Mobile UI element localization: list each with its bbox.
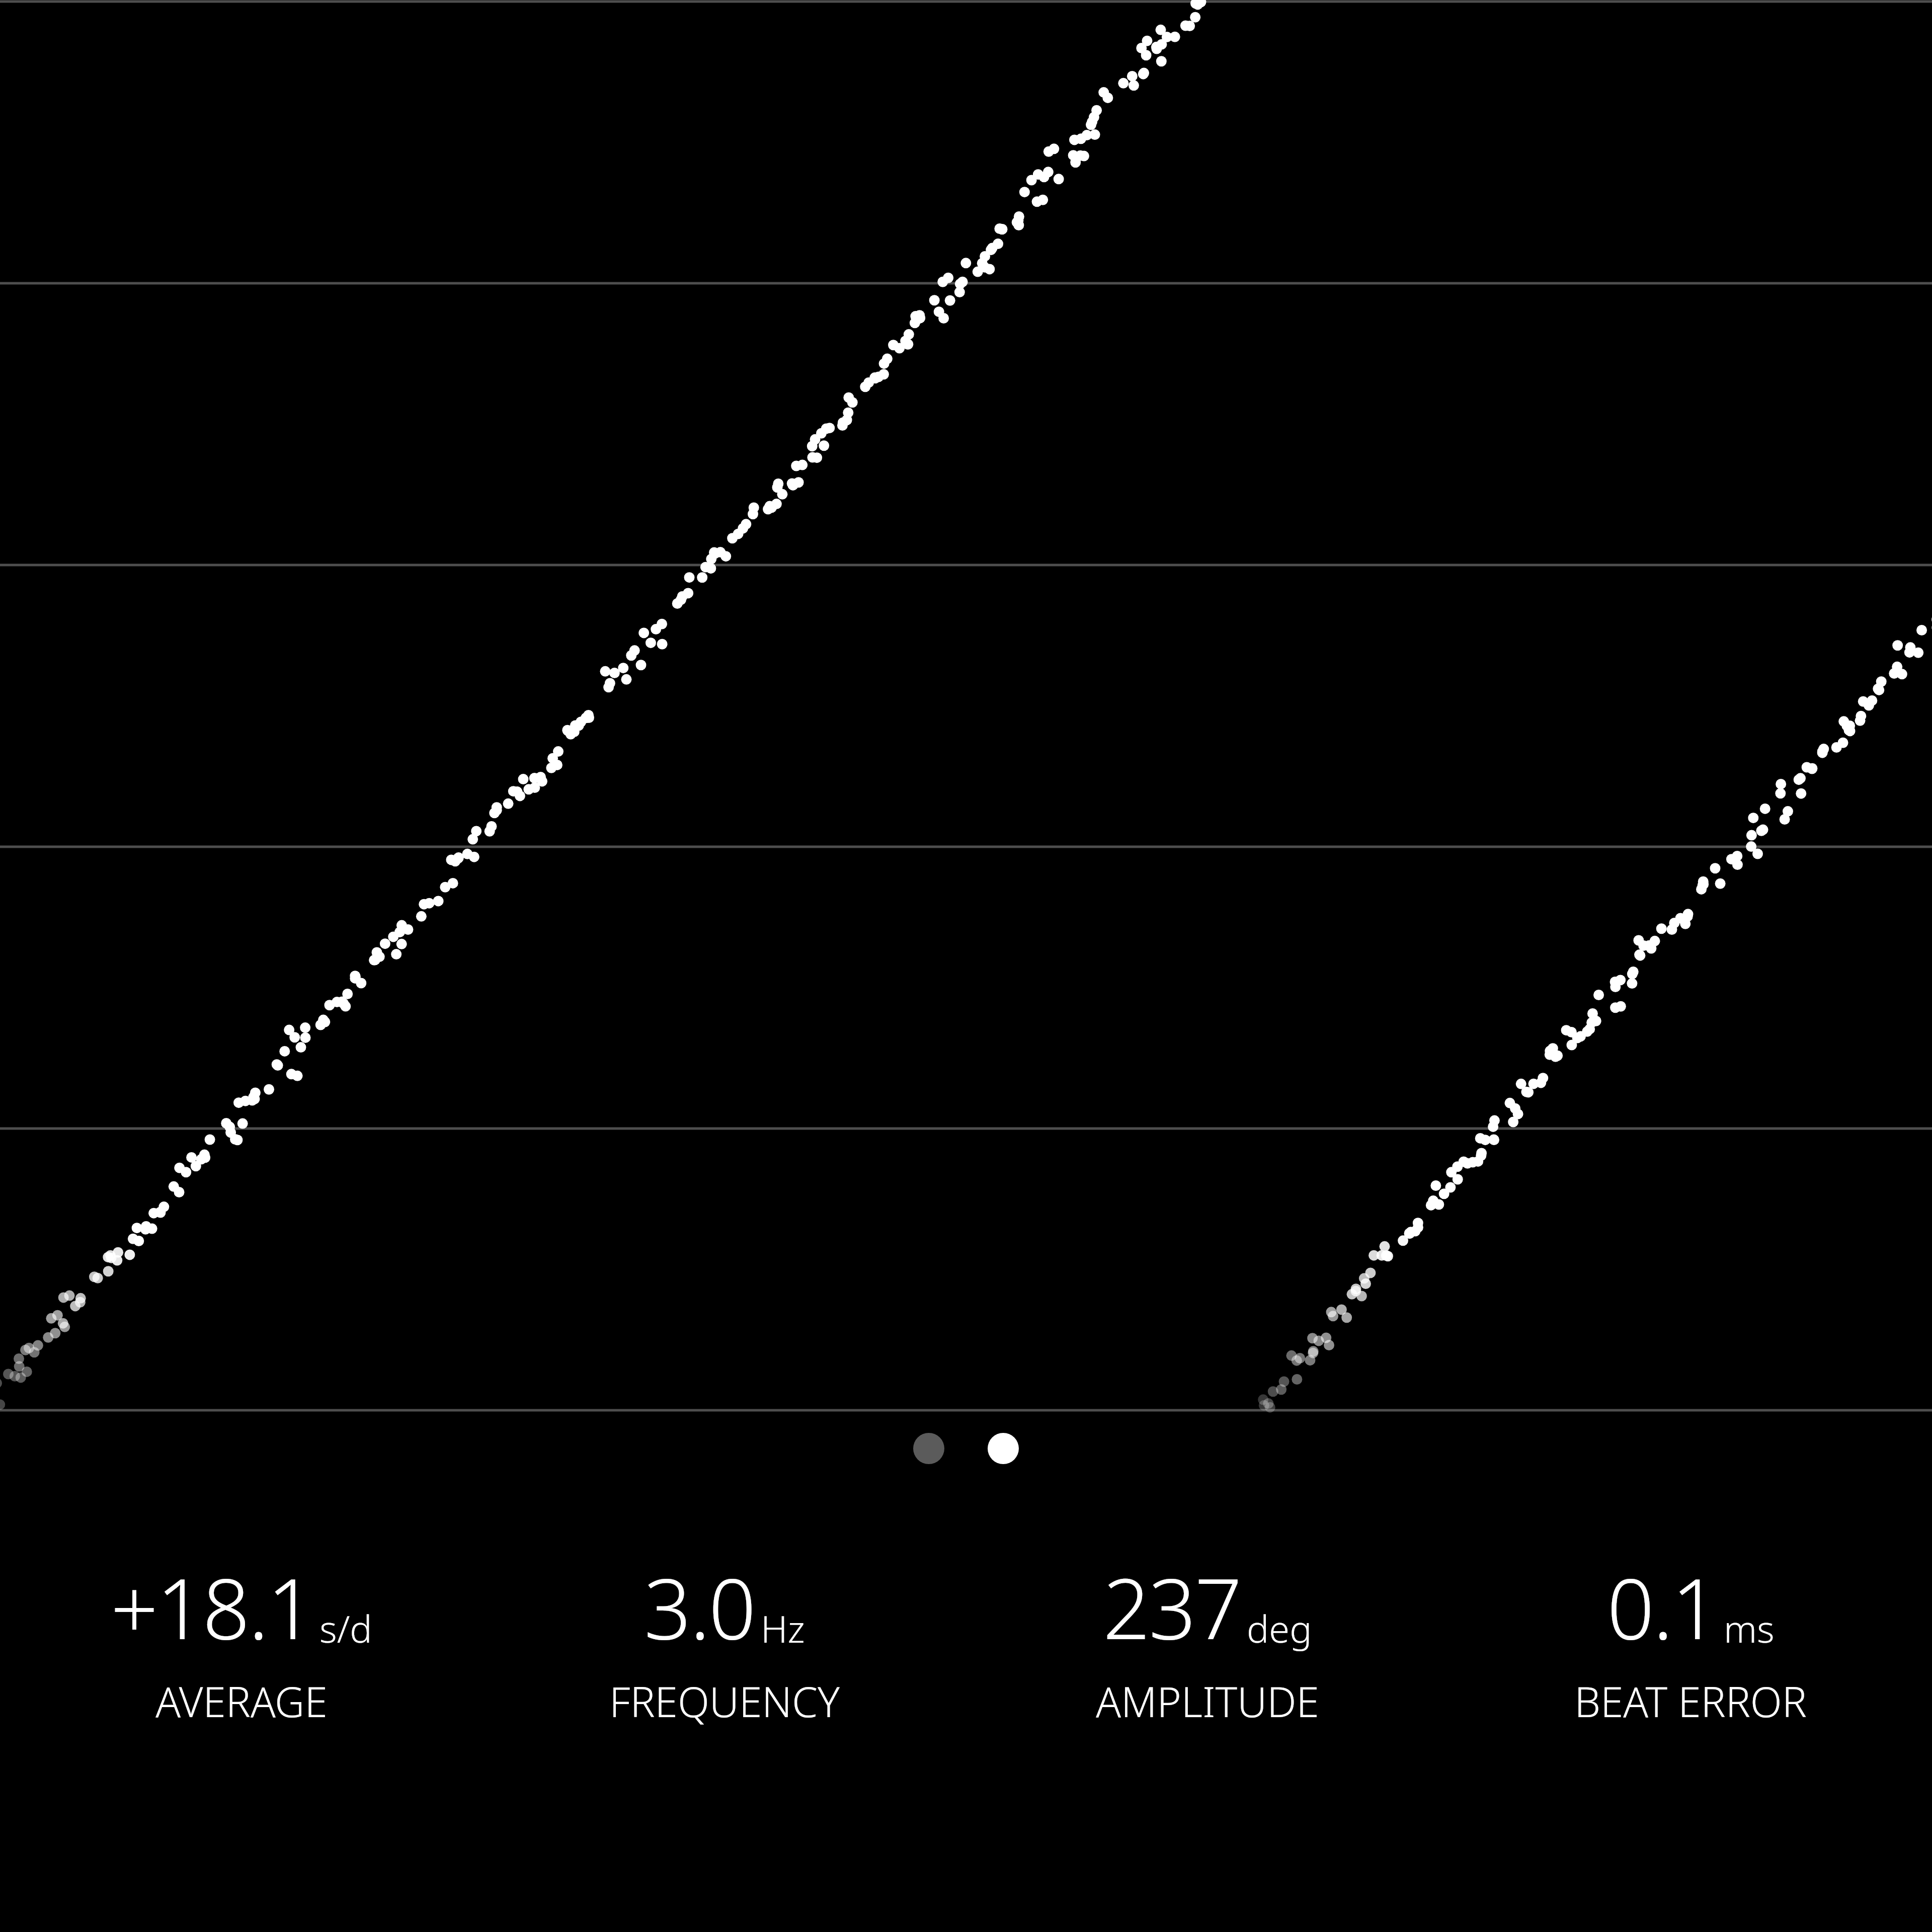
staticText: 237 — [1103, 1551, 1241, 1664]
staticText: +18.1 — [111, 1551, 313, 1664]
staticText: 3.0 — [644, 1551, 755, 1664]
button[interactable]: 0.1 — [1449, 1551, 1932, 1729]
staticText: deg — [1247, 1603, 1312, 1654]
button[interactable]: +18.1 — [0, 1551, 483, 1729]
button[interactable]: Rate trace graph — [0, 0, 1932, 1412]
staticText: ms — [1724, 1603, 1775, 1654]
staticText: 0.1 — [1607, 1551, 1718, 1664]
staticText: FREQUENCY — [609, 1673, 840, 1729]
button[interactable]: 237 — [966, 1551, 1449, 1729]
staticText: AMPLITUDE — [1096, 1673, 1319, 1729]
button[interactable]: Page 2, selected — [988, 1433, 1019, 1464]
staticText: s/d — [319, 1603, 372, 1654]
button[interactable]: Page 1 — [913, 1433, 944, 1464]
button[interactable]: 3.0 — [483, 1551, 966, 1729]
staticText: BEAT ERROR — [1574, 1673, 1807, 1729]
staticText: AVERAGE — [155, 1673, 328, 1729]
staticText: Hz — [761, 1603, 805, 1654]
